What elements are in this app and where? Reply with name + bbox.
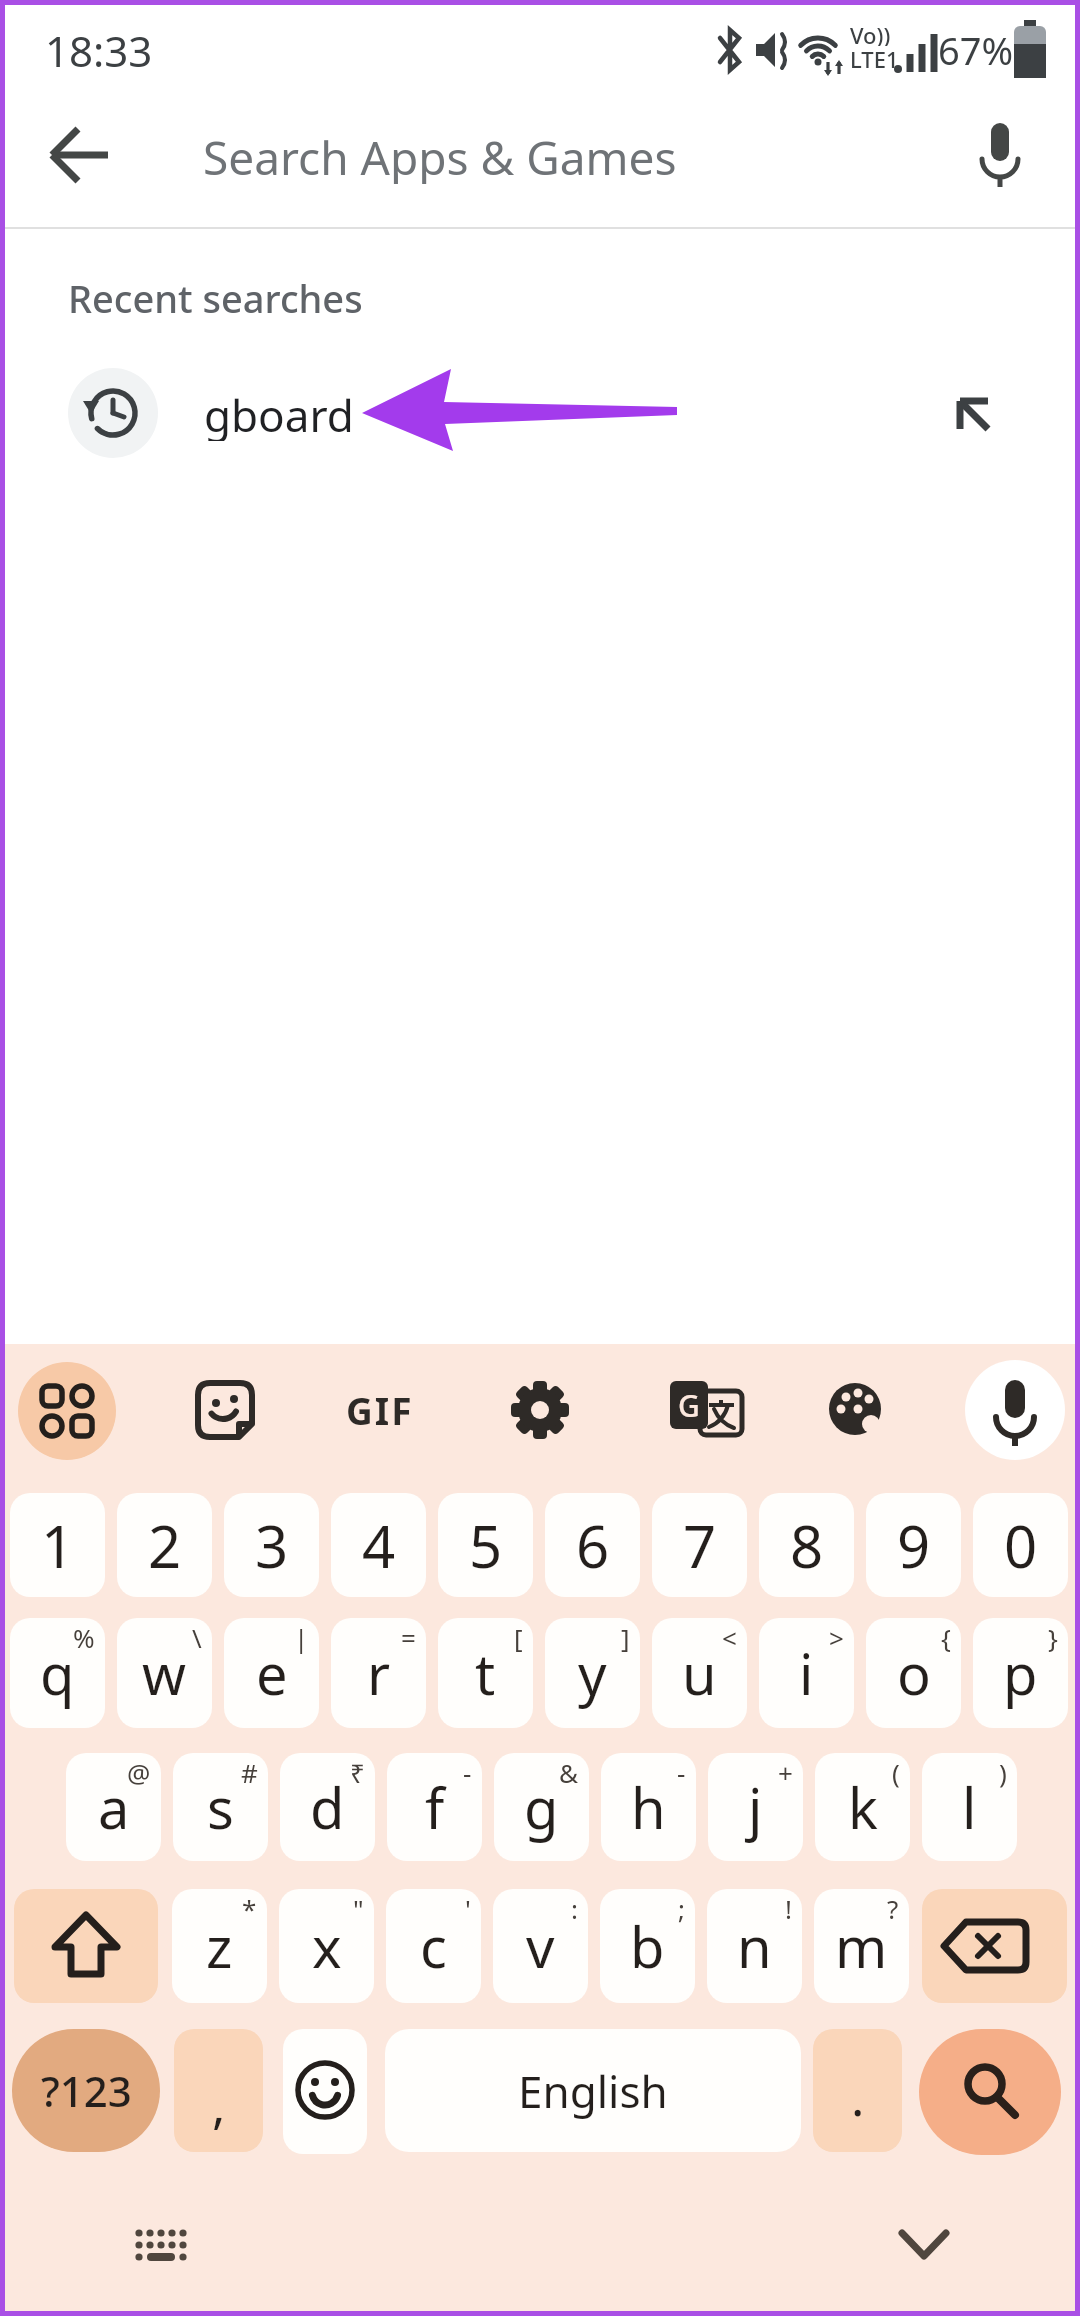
staticText: { (941, 1620, 951, 1655)
button[interactable]: 8 (759, 1493, 854, 1597)
button[interactable]: d (280, 1753, 375, 1861)
button[interactable]: v (493, 1889, 588, 2003)
button[interactable]: 6 (545, 1493, 640, 1597)
button[interactable] (283, 2029, 367, 2154)
staticText: gboard (204, 385, 354, 441)
staticText: j (748, 1769, 763, 1845)
button[interactable]: a (66, 1753, 161, 1861)
button[interactable]: r (331, 1618, 426, 1728)
button[interactable]: g (494, 1753, 589, 1861)
staticText: . (851, 2063, 865, 2131)
button[interactable]: c (386, 1889, 481, 2003)
staticText: 6 (576, 1506, 610, 1585)
button[interactable] (509, 1379, 571, 1441)
staticText: ' (465, 1891, 471, 1926)
staticText: ? (887, 1891, 899, 1926)
button[interactable]: 7 (652, 1493, 747, 1597)
button[interactable]: s (173, 1753, 268, 1861)
staticText: # (241, 1755, 258, 1790)
staticText: > (829, 1620, 844, 1655)
button[interactable]: 2 (117, 1493, 212, 1597)
staticText: - (677, 1755, 686, 1790)
button[interactable]: x (279, 1889, 374, 2003)
button[interactable] (938, 383, 1008, 447)
button[interactable]: 5 (438, 1493, 533, 1597)
staticText: 67% (938, 24, 1014, 76)
button[interactable]: t (438, 1618, 533, 1728)
button[interactable]: j (708, 1753, 803, 1861)
staticText: @ (127, 1755, 151, 1790)
staticText: t (475, 1635, 496, 1711)
button[interactable]: w (117, 1618, 212, 1728)
button[interactable]: y (545, 1618, 640, 1728)
staticText: c (420, 1908, 447, 1984)
button[interactable]: 9 (866, 1493, 961, 1597)
staticText: r (367, 1635, 391, 1711)
staticText: 2 (148, 1506, 182, 1585)
button[interactable]: ?123 (12, 2029, 160, 2152)
staticText: x (312, 1908, 342, 1984)
button[interactable]: u (652, 1618, 747, 1728)
button[interactable]: l (922, 1753, 1017, 1861)
staticText: + (778, 1755, 793, 1790)
button[interactable] (18, 1362, 116, 1460)
staticText: , (212, 2071, 226, 2139)
button[interactable] (965, 1360, 1065, 1460)
staticText: \ (192, 1620, 202, 1655)
button[interactable] (888, 2218, 958, 2272)
staticText: 18:33 (45, 22, 153, 78)
staticText: i (799, 1635, 814, 1711)
staticText: % (73, 1620, 95, 1655)
button[interactable]: i (759, 1618, 854, 1728)
button[interactable]: English (385, 2029, 801, 2152)
staticText: y (578, 1635, 607, 1711)
staticText: Search Apps & Games (203, 126, 677, 184)
button[interactable]: e (224, 1618, 319, 1728)
button[interactable]: G (668, 1379, 744, 1441)
staticText: [ (514, 1620, 523, 1655)
button[interactable]: b (600, 1889, 695, 2003)
button[interactable] (824, 1379, 886, 1441)
button[interactable] (922, 1889, 1067, 2003)
button[interactable]: q (10, 1618, 105, 1728)
staticText: < (722, 1620, 737, 1655)
staticText: 1 (41, 1506, 75, 1585)
button[interactable]: f (387, 1753, 482, 1861)
button[interactable]: 3 (224, 1493, 319, 1597)
staticText: e (256, 1635, 288, 1711)
button[interactable]: k (815, 1753, 910, 1861)
button[interactable] (194, 1379, 256, 1441)
button[interactable]: m (814, 1889, 909, 2003)
button[interactable]: 1 (10, 1493, 105, 1597)
button[interactable] (14, 1889, 158, 2003)
button[interactable] (0, 348, 1080, 478)
button[interactable]: n (707, 1889, 802, 2003)
staticText: ( (892, 1755, 900, 1790)
staticText: m (835, 1908, 888, 1984)
button[interactable]: 0 (973, 1493, 1068, 1597)
staticText: w (142, 1635, 187, 1711)
button[interactable] (965, 115, 1035, 195)
button[interactable] (919, 2029, 1061, 2155)
staticText: | (294, 1620, 309, 1655)
staticText: 4 (362, 1506, 396, 1585)
staticText: o (897, 1635, 931, 1711)
staticText: u (682, 1635, 717, 1711)
staticText: s (207, 1769, 234, 1845)
button[interactable]: . (813, 2029, 902, 2152)
staticText: n (737, 1908, 772, 1984)
staticText: ) (999, 1755, 1007, 1790)
button[interactable]: h (601, 1753, 696, 1861)
button[interactable]: 4 (331, 1493, 426, 1597)
button[interactable]: z (172, 1889, 267, 2003)
button[interactable]: o (866, 1618, 961, 1728)
button[interactable] (40, 115, 120, 195)
button[interactable]: , (174, 2029, 263, 2152)
button[interactable]: p (973, 1618, 1068, 1728)
staticText: ] (621, 1620, 630, 1655)
staticText: English (518, 2061, 668, 2121)
staticText: z (206, 1908, 233, 1984)
staticText: 7 (683, 1506, 717, 1585)
staticText: = (401, 1620, 416, 1655)
staticText: " (353, 1891, 364, 1926)
